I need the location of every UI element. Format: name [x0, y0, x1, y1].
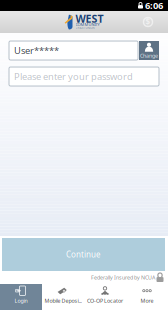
staticText: Continue	[66, 249, 101, 260]
staticText: More	[140, 297, 153, 304]
staticText: WEST	[75, 11, 103, 26]
button[interactable]: CO-OP Locator	[84, 284, 126, 310]
staticText: COMMUNITY	[75, 22, 99, 27]
staticText: CREDIT UNION	[75, 26, 94, 30]
staticText: CO-OP Locator	[87, 297, 123, 304]
staticText: Mobile Deposi...	[44, 297, 81, 304]
staticText: Login	[14, 297, 27, 304]
staticText: Change	[140, 52, 158, 59]
button[interactable]: More	[126, 284, 168, 310]
staticText: 6:06	[145, 0, 163, 12]
staticText: Federally Insured by NCUA	[91, 274, 155, 281]
staticText: $	[145, 17, 150, 27]
staticText: User*****	[14, 44, 59, 57]
button[interactable]: Change	[139, 41, 159, 60]
button[interactable]: Mobile Deposi...	[42, 284, 84, 310]
button[interactable]: Login	[0, 284, 42, 310]
staticText: Please enter your password	[14, 70, 133, 83]
button[interactable]: Continue	[2, 238, 165, 271]
